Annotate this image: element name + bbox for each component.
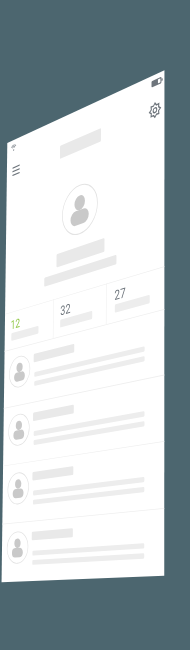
button[interactable]: Phone app mockup (0, 0, 190, 650)
